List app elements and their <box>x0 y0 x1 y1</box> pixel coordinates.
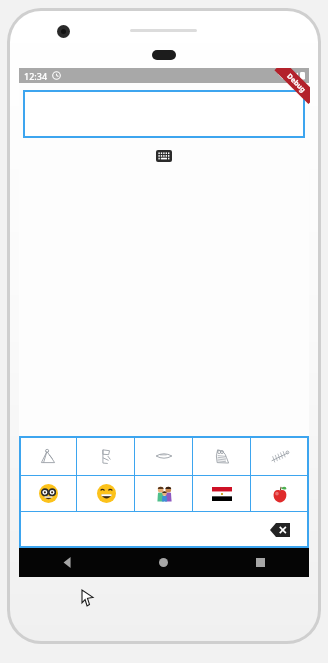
staticText: Debug <box>284 71 308 95</box>
button[interactable]: Emoji key <box>193 476 251 511</box>
button[interactable]: Show keyboard <box>156 150 172 162</box>
button[interactable]: Recent apps <box>212 548 309 577</box>
button[interactable]: Hieroglyph key <box>19 436 77 475</box>
button[interactable]: Backspace <box>251 512 309 548</box>
button[interactable]: Hieroglyph key <box>193 436 251 475</box>
button[interactable]: Hieroglyph key <box>251 436 309 475</box>
button[interactable]: Emoji key <box>77 476 135 511</box>
button[interactable]: Home <box>115 548 212 577</box>
button[interactable] <box>23 90 305 138</box>
button[interactable]: Emoji key <box>251 476 309 511</box>
button[interactable]: Emoji key <box>19 476 77 511</box>
button[interactable]: Emoji key <box>135 476 193 511</box>
button[interactable]: Hieroglyph key <box>77 436 135 475</box>
button[interactable]: Hieroglyph key <box>135 436 193 475</box>
button[interactable]: Back <box>19 548 115 577</box>
staticText: 12:34 <box>24 70 48 82</box>
